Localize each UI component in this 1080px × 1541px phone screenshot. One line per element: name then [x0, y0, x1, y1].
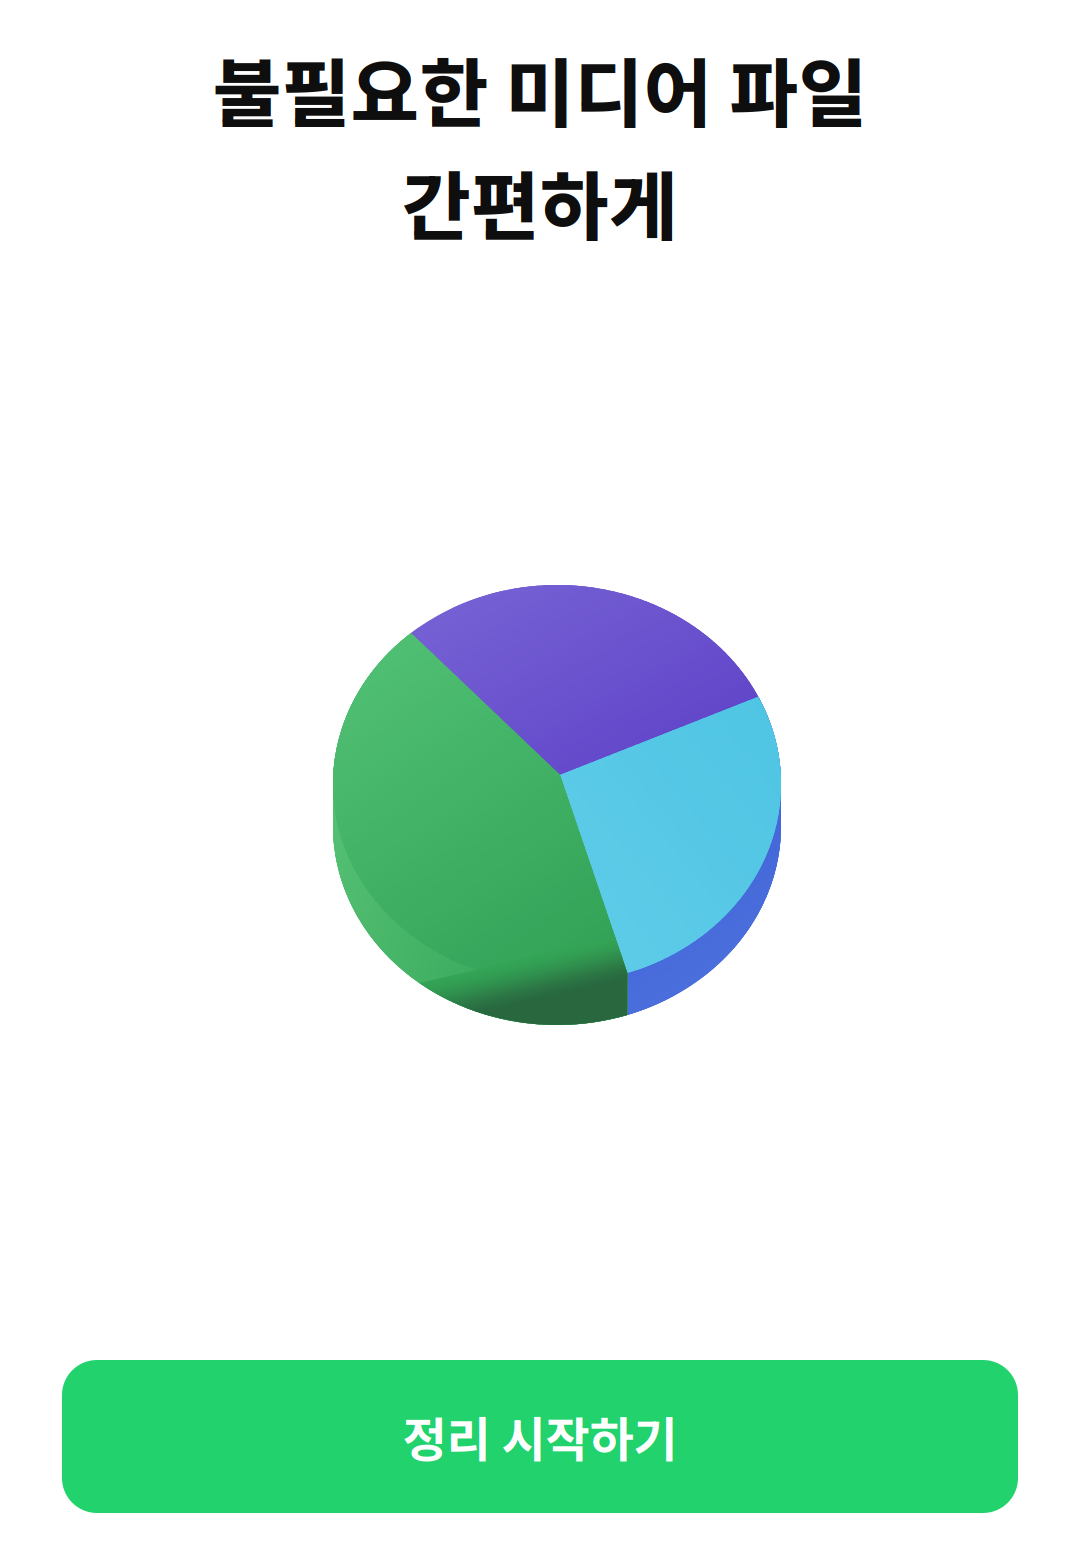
- staticText: 정리 시작하기: [402, 1402, 677, 1471]
- staticText: 간편하게: [402, 147, 678, 255]
- button[interactable]: 정리 시작하기: [62, 1360, 1018, 1513]
- staticText: 불필요한 미디어 파일: [212, 34, 867, 142]
